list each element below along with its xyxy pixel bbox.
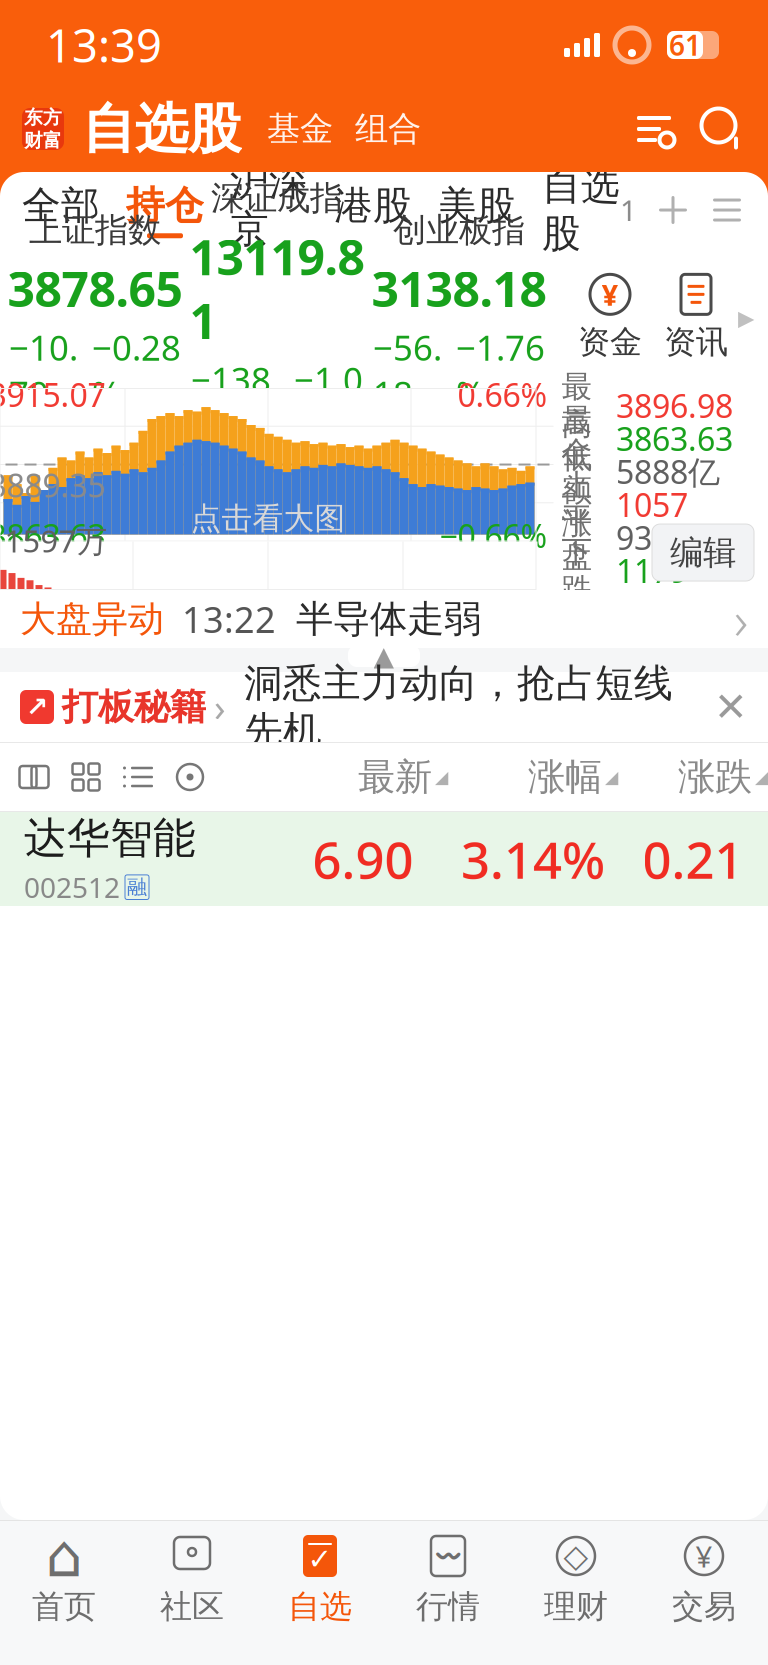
staticText: ✕ [714, 684, 748, 730]
button[interactable]: 上证指数 [4, 210, 186, 426]
button[interactable]: 持仓 [100, 182, 204, 238]
button[interactable]: 全部 [0, 182, 100, 238]
button[interactable]: 港股 [308, 182, 412, 238]
button[interactable]: ◇ [512, 1533, 640, 1626]
button[interactable]: 编辑 [652, 524, 754, 581]
button[interactable]: 卡片视图 [8, 754, 60, 800]
button[interactable]: 创业板指 [368, 210, 550, 426]
staticText: 全部 [22, 182, 100, 229]
staticText: −56.18 [373, 324, 442, 416]
staticText: 组合 [355, 108, 421, 149]
staticText: ▲ [373, 641, 394, 671]
staticText: 首页 [32, 1587, 96, 1626]
staticText: ◢ [435, 767, 448, 787]
staticText: ⌂ [45, 1523, 82, 1589]
button[interactable]: 自选股 [64, 96, 241, 162]
staticText: 基金 [267, 108, 333, 149]
staticText: 最低 [561, 401, 592, 476]
button[interactable]: 基金 [241, 108, 333, 149]
staticText: −0.28% [92, 324, 181, 416]
staticText: 1057 [616, 483, 688, 526]
staticText: 美股 [438, 182, 516, 229]
staticText: 持仓 [126, 182, 204, 229]
staticText: ¥ [601, 275, 618, 314]
button[interactable]: 涨跌 [618, 754, 768, 800]
button[interactable]: 社区 [128, 1533, 256, 1626]
staticText: 下跌 [561, 533, 592, 608]
button[interactable]: 关闭 [708, 684, 754, 730]
staticText: 财富 [24, 129, 62, 152]
staticText: 3915.07 [0, 373, 105, 416]
button[interactable]: 美股 [412, 182, 516, 238]
staticText: 编辑 [670, 532, 736, 573]
staticText: −1.76% [456, 324, 545, 416]
staticText: 1 [620, 190, 637, 229]
staticText: 3138.18 [371, 257, 546, 320]
button[interactable]: ✓ [256, 1533, 384, 1626]
button[interactable]: 自选股 [516, 162, 637, 257]
staticText: 3863.63 [616, 417, 733, 460]
staticText: 自选股 [542, 162, 620, 257]
staticText: 达华智能 [24, 812, 196, 865]
button[interactable]: 搜索 [674, 105, 746, 153]
staticText: ↗ [26, 692, 48, 722]
staticText: 最新 [358, 754, 432, 800]
staticText: −138.52 [191, 356, 280, 448]
staticText: 61 [669, 26, 701, 64]
button[interactable]: ↗ [20, 659, 673, 754]
staticText: 自选股 [82, 96, 241, 162]
button[interactable]: 列表视图 [112, 754, 164, 800]
staticText: 深证成指 [211, 178, 343, 219]
staticText: 1597万 [4, 520, 107, 561]
staticText: 大盘异动 [20, 597, 164, 641]
staticText: 3.14% [461, 825, 605, 893]
staticText: › [734, 584, 748, 654]
staticText: ◢ [605, 767, 618, 787]
button[interactable]: 东方财富 [22, 108, 64, 150]
button[interactable]: 指数走势图 [0, 388, 536, 589]
staticText: 1179 [616, 549, 688, 592]
button[interactable]: 收起 [348, 645, 420, 667]
staticText: ✓ [307, 1542, 332, 1576]
button[interactable]: 涨幅 [448, 754, 618, 800]
staticText: 平盘 [561, 500, 592, 575]
staticText: 3896.98 [616, 384, 733, 427]
button[interactable]: 设置 [634, 109, 674, 149]
button[interactable]: 资讯 [646, 274, 732, 362]
staticText: 东方 [24, 106, 62, 129]
staticText: 3863.63 [0, 514, 105, 557]
staticText: 创业板指 [393, 210, 525, 250]
staticText: ¥ [695, 1536, 712, 1575]
button[interactable]: 组合 [333, 108, 421, 149]
staticText: 0.66% [457, 373, 547, 416]
staticText: › [214, 682, 226, 732]
button[interactable]: 添加 [650, 187, 696, 233]
staticText: 行情 [416, 1587, 480, 1626]
staticText: 002512 [24, 869, 120, 906]
button[interactable]: ¥ [640, 1533, 768, 1626]
staticText: 半导体走弱 [296, 596, 481, 642]
staticText: 金额 [561, 434, 592, 509]
staticText: 自选 [288, 1587, 352, 1626]
button[interactable]: 〰 [384, 1533, 512, 1626]
button[interactable]: 设置列 [164, 754, 216, 800]
staticText: 〰 [433, 1542, 463, 1570]
staticText: 6.90 [312, 825, 413, 893]
button[interactable]: 最新 [278, 754, 448, 800]
staticText: 港股 [334, 182, 412, 229]
staticText: 涨跌 [678, 754, 752, 800]
staticText: 交易 [672, 1587, 736, 1626]
button[interactable]: 网格视图 [60, 754, 112, 800]
staticText: −10.70 [9, 324, 78, 416]
button[interactable]: 更多 [696, 187, 750, 233]
button[interactable]: ⌂ [0, 1533, 128, 1626]
button[interactable]: ¥ [574, 274, 646, 362]
staticText: −1.04% [294, 356, 363, 448]
staticText: 沪深京 [230, 158, 308, 253]
button[interactable]: 深证成指 [186, 178, 368, 458]
button[interactable]: 大盘异动 [0, 590, 768, 648]
staticText: 上证指数 [29, 210, 161, 250]
button[interactable]: 达华智能 [0, 812, 768, 906]
button[interactable]: 沪深京 [204, 158, 308, 262]
staticText: −0.66% [439, 514, 547, 557]
